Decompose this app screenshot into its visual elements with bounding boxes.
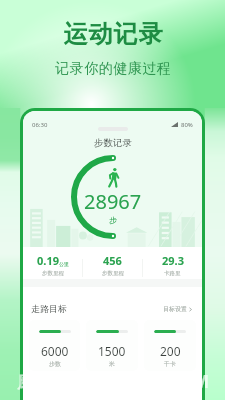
staticText: 6000 — [41, 343, 69, 359]
button[interactable]: 0.19 — [23, 252, 82, 278]
staticText: 步数 — [49, 360, 61, 368]
staticText: 200 — [160, 343, 181, 359]
staticText: 28967 — [84, 188, 142, 215]
staticText: 记录你的健康过程 — [55, 60, 171, 78]
staticText: 06:30 — [32, 121, 48, 129]
staticText: 公里 — [59, 261, 69, 267]
staticText: 步数里程 — [102, 270, 124, 277]
staticText: 康复网 ◆ KANGZM.COM — [17, 370, 209, 390]
staticText: 目标设置 — [163, 305, 187, 313]
button[interactable]: 1500 — [86, 320, 138, 371]
button[interactable]: 456 — [83, 252, 142, 278]
button[interactable]: 200 — [144, 320, 196, 371]
staticText: 29.3 — [162, 253, 184, 268]
button[interactable]: 29.3 — [143, 252, 202, 278]
staticText: 走路目标 — [31, 303, 67, 314]
staticText: 步数记录 — [94, 137, 132, 148]
staticText: 0.19 — [37, 253, 59, 268]
staticText: 运动记录 — [63, 19, 163, 49]
staticText: 1500 — [98, 343, 126, 359]
button[interactable]: 目标设置 — [161, 304, 194, 314]
staticText: 步数里程 — [42, 270, 64, 277]
staticText: 千卡 — [164, 360, 176, 368]
staticText: 卡路里 — [164, 270, 181, 277]
button[interactable]: 6000 — [29, 320, 80, 371]
staticText: 456 — [103, 253, 122, 268]
staticText: 80% — [181, 121, 193, 129]
staticText: 步 — [109, 215, 117, 225]
staticText: 米 — [109, 360, 115, 368]
